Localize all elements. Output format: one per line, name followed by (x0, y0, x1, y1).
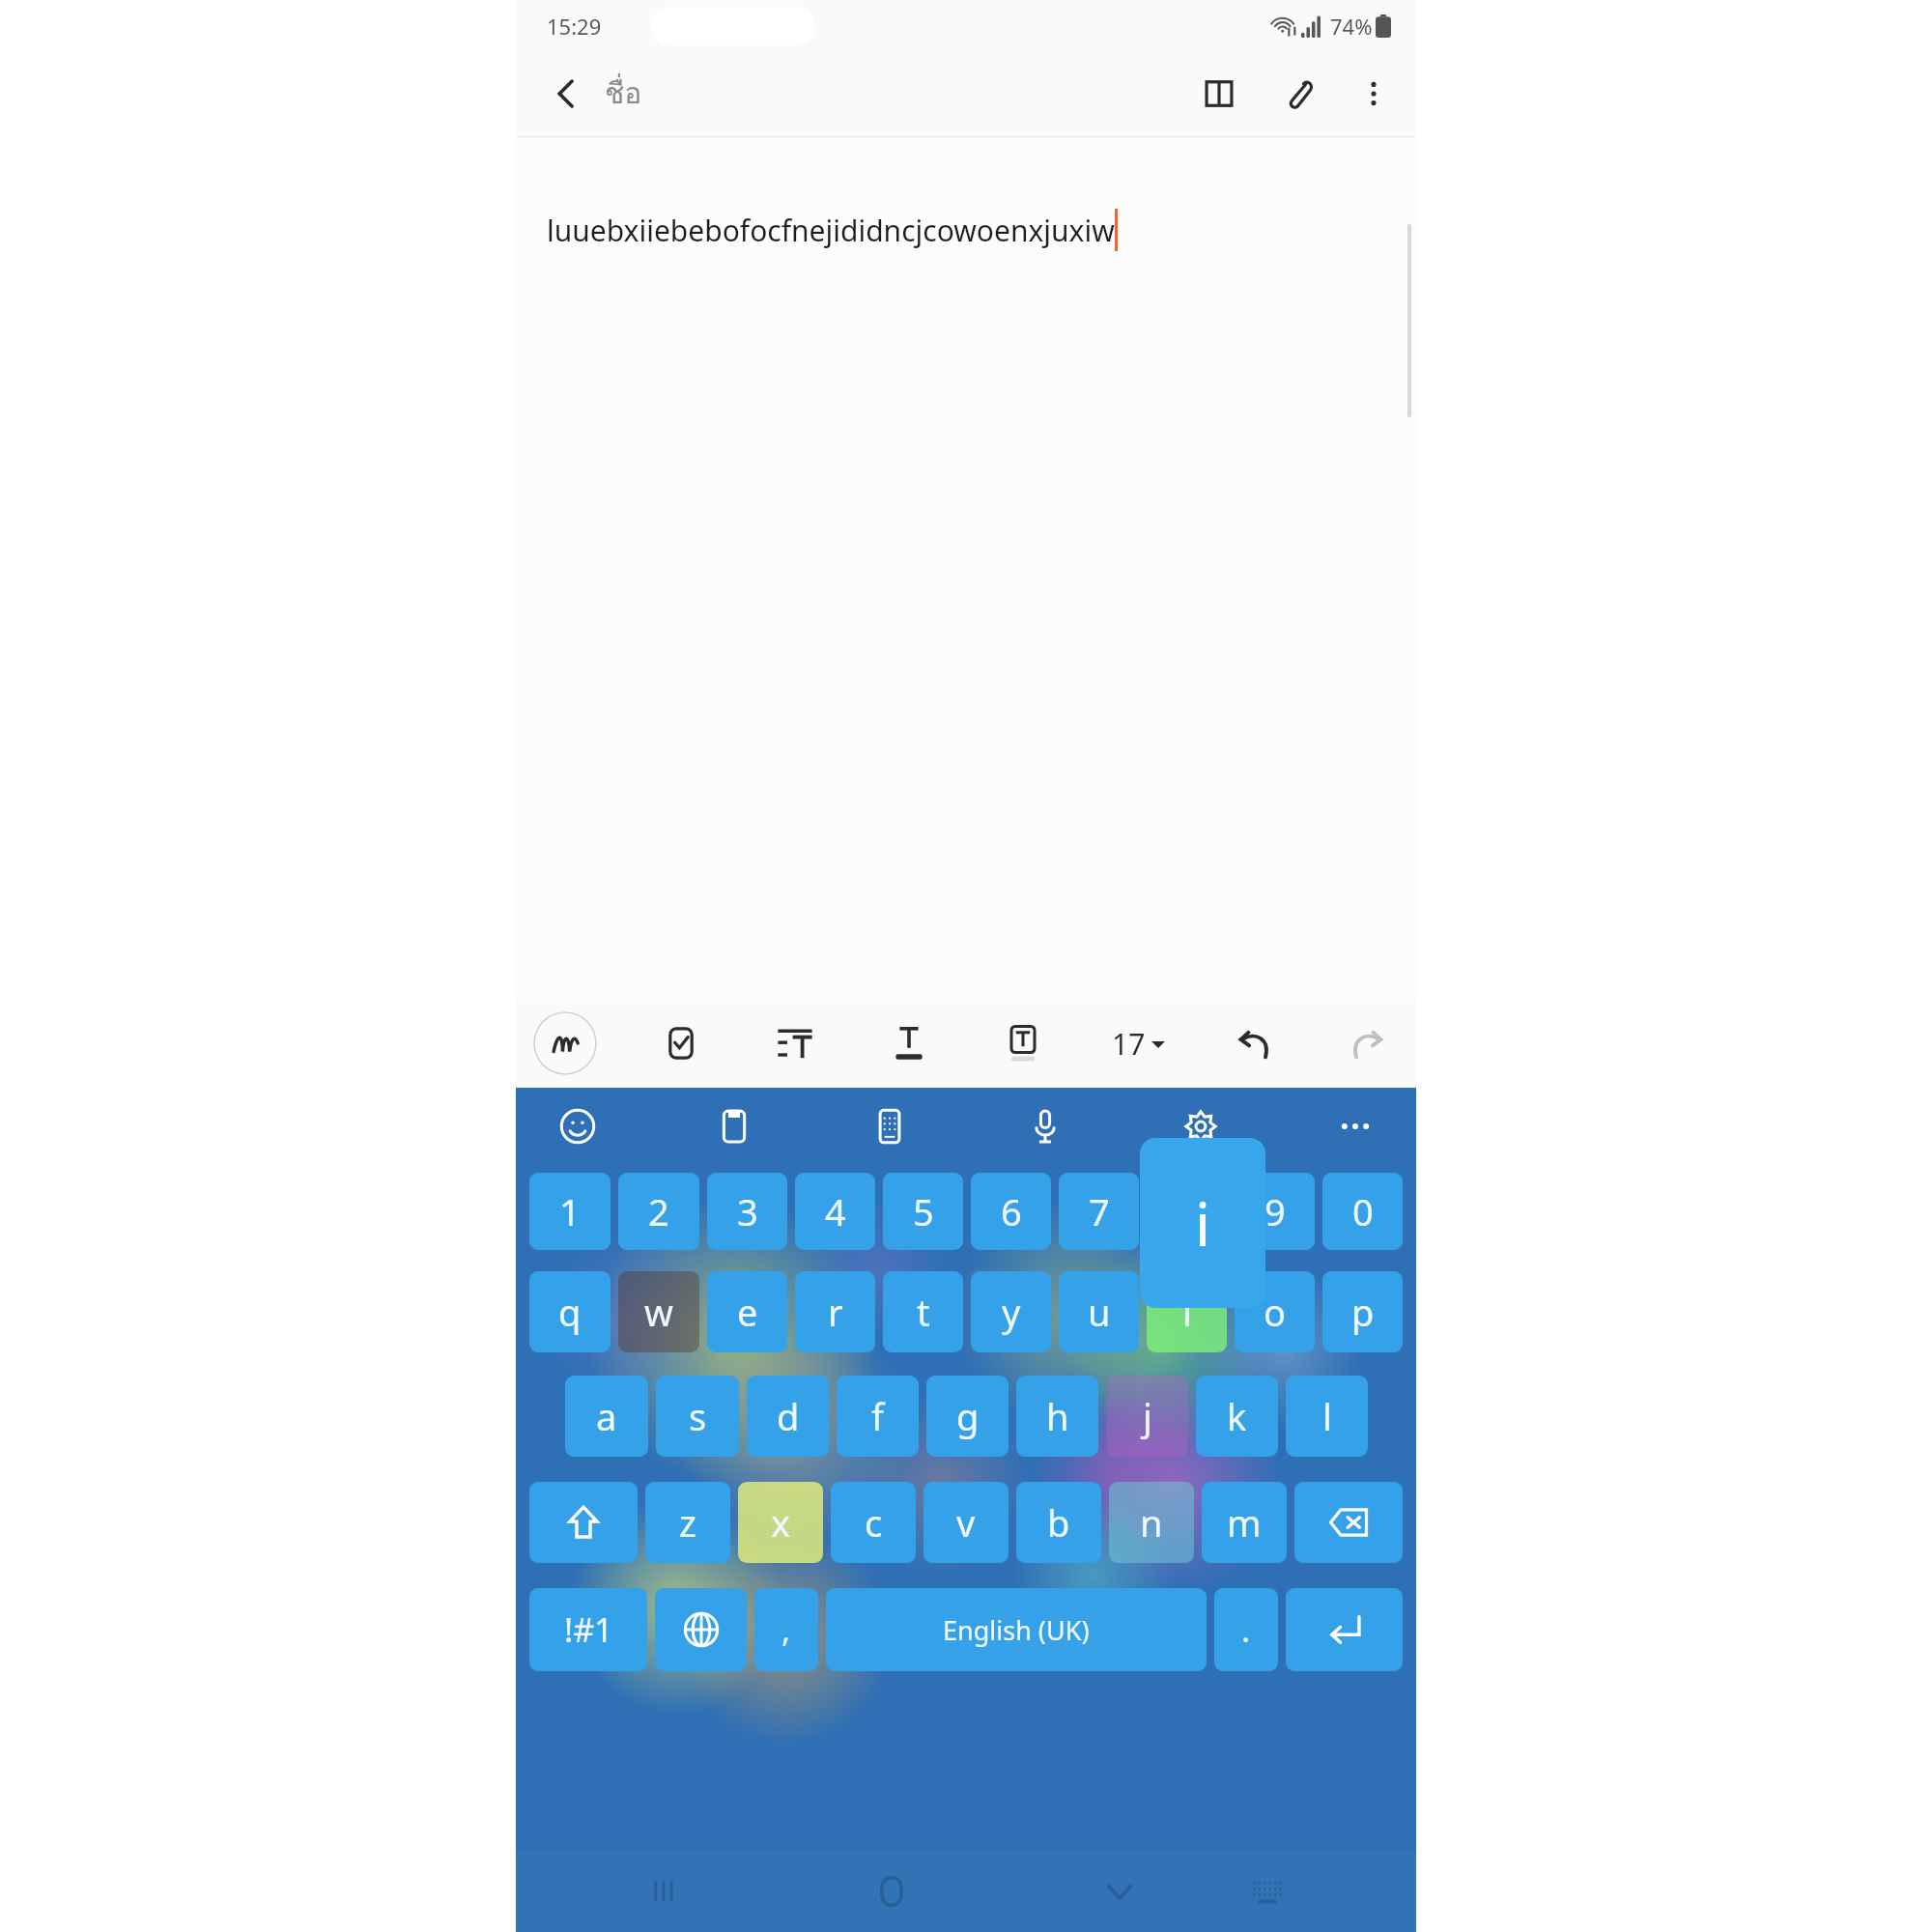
button[interactable]: Shift (529, 1482, 638, 1563)
staticText: b (1047, 1497, 1070, 1548)
button[interactable]: p (1322, 1271, 1403, 1352)
button[interactable]: x (738, 1482, 823, 1563)
button[interactable]: 7 (1059, 1173, 1139, 1250)
staticText: t (917, 1287, 930, 1337)
staticText: u (1088, 1287, 1111, 1337)
staticText: 15:29 (547, 12, 602, 41)
staticText: h (1046, 1391, 1069, 1441)
button[interactable]: 4 (795, 1173, 875, 1250)
staticText: 17 (1112, 1024, 1146, 1064)
staticText: 4 (825, 1186, 846, 1236)
button[interactable]: o (1235, 1271, 1315, 1352)
button[interactable]: Settings (1174, 1099, 1228, 1153)
button[interactable]: c (831, 1482, 916, 1563)
button[interactable]: Keyboard layout (1234, 1858, 1301, 1925)
button[interactable]: More options (1343, 63, 1405, 125)
button[interactable]: e (707, 1271, 787, 1352)
button[interactable]: Home (858, 1858, 925, 1925)
button[interactable]: . (1214, 1588, 1278, 1671)
button[interactable]: a (565, 1376, 648, 1457)
button[interactable]: u (1059, 1271, 1139, 1352)
button[interactable]: Paragraph style (764, 1012, 826, 1074)
button[interactable]: 17 (1106, 1016, 1171, 1071)
staticText: i (1182, 1287, 1192, 1337)
staticText: i (1195, 1182, 1210, 1264)
button[interactable]: i (1147, 1271, 1227, 1352)
button[interactable]: English (UK) (826, 1588, 1207, 1671)
button[interactable]: !#1 (529, 1588, 647, 1671)
staticText: x (771, 1497, 791, 1548)
button[interactable]: Checklist (650, 1012, 712, 1074)
staticText: m (1227, 1497, 1262, 1548)
staticText: j (1143, 1391, 1152, 1441)
button[interactable]: t (883, 1271, 963, 1352)
button[interactable]: Redo (1337, 1012, 1399, 1074)
button[interactable]: 1 (529, 1173, 611, 1250)
button[interactable]: Change language (655, 1588, 747, 1671)
button[interactable]: Reading view (1188, 63, 1250, 125)
staticText: d (777, 1391, 800, 1441)
button[interactable]: Handwriting (533, 1011, 597, 1075)
staticText: c (865, 1497, 883, 1548)
button[interactable]: Text colour (878, 1012, 940, 1074)
staticText: p (1351, 1287, 1375, 1337)
button[interactable]: w (618, 1271, 699, 1352)
button[interactable]: Voice input (1018, 1099, 1072, 1153)
button[interactable]: 6 (971, 1173, 1051, 1250)
button[interactable]: Clipboard (707, 1099, 761, 1153)
button[interactable]: Keypad (863, 1099, 917, 1153)
button[interactable]: v (923, 1482, 1009, 1563)
staticText: r (828, 1287, 843, 1337)
button[interactable]: More (1329, 1100, 1381, 1152)
button[interactable]: 9 (1235, 1173, 1315, 1250)
staticText: , (781, 1607, 791, 1652)
button[interactable]: Attach (1267, 63, 1329, 125)
button[interactable]: 5 (883, 1173, 963, 1250)
button[interactable]: g (926, 1376, 1009, 1457)
staticText: s (689, 1391, 707, 1441)
button[interactable]: 0 (1322, 1173, 1403, 1250)
button[interactable]: Back (537, 65, 595, 123)
button[interactable]: 2 (618, 1173, 699, 1250)
staticText: q (558, 1287, 582, 1337)
button[interactable]: Hide keyboard (1086, 1858, 1153, 1925)
button[interactable]: Recents (630, 1858, 697, 1925)
button[interactable]: r (795, 1271, 875, 1352)
button[interactable]: l (1286, 1376, 1368, 1457)
button[interactable]: y (971, 1271, 1051, 1352)
staticText: 6 (1001, 1186, 1022, 1236)
staticText: 3 (737, 1186, 758, 1236)
staticText: luuebxiiebebofocfnejididncjcowoenxjuxiw (547, 211, 1115, 250)
button[interactable]: Emoji (551, 1099, 605, 1153)
button[interactable]: h (1016, 1376, 1098, 1457)
button[interactable]: 3 (707, 1173, 787, 1250)
button[interactable]: z (645, 1482, 730, 1563)
staticText: v (956, 1497, 976, 1548)
staticText: f (871, 1391, 885, 1441)
staticText: y (1002, 1287, 1021, 1337)
button[interactable]: b (1016, 1482, 1101, 1563)
button[interactable]: Undo (1223, 1012, 1285, 1074)
button[interactable]: Enter (1286, 1588, 1403, 1671)
staticText: 7 (1089, 1186, 1110, 1236)
button[interactable]: Backspace (1294, 1482, 1403, 1563)
button[interactable]: luuebxiiebebofocfnejididncjcowoenxjuxiw (516, 137, 1416, 999)
button[interactable]: f (837, 1376, 919, 1457)
staticText: !#1 (564, 1607, 613, 1652)
button[interactable]: n (1109, 1482, 1194, 1563)
staticText: 0 (1352, 1186, 1374, 1236)
staticText: English (UK) (943, 1612, 1090, 1648)
button[interactable]: q (529, 1271, 611, 1352)
button[interactable]: , (754, 1588, 818, 1671)
button[interactable]: d (747, 1376, 829, 1457)
button[interactable]: s (656, 1376, 739, 1457)
button[interactable]: Highlight (992, 1012, 1054, 1074)
staticText: ชื่อ (605, 71, 642, 117)
staticText: n (1140, 1497, 1163, 1548)
staticText: o (1264, 1287, 1286, 1337)
button[interactable]: k (1196, 1376, 1278, 1457)
button[interactable]: m (1202, 1482, 1287, 1563)
button[interactable]: j (1106, 1376, 1188, 1457)
staticText: 1 (559, 1186, 581, 1236)
staticText: w (644, 1287, 673, 1337)
